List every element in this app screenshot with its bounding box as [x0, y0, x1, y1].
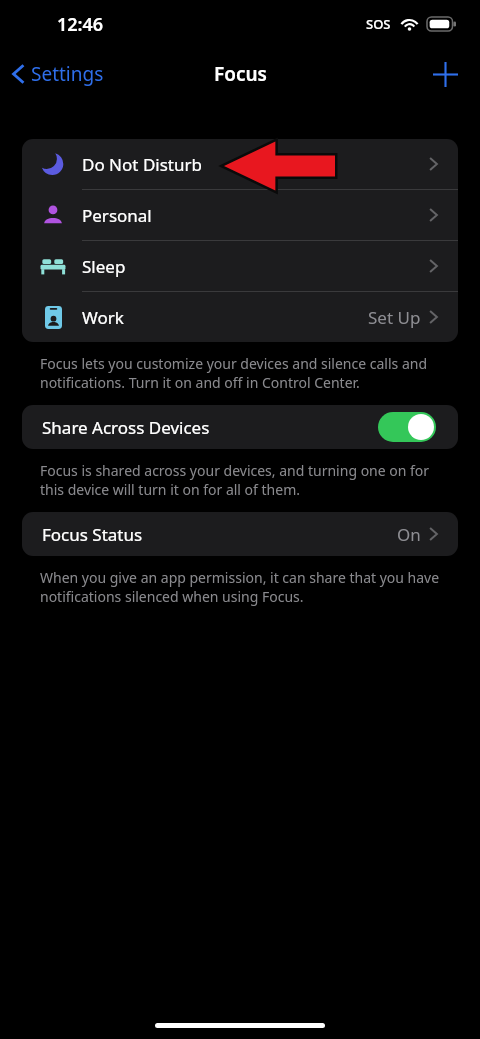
staticText: On	[397, 523, 421, 546]
staticText: When you give an app permission, it can …	[40, 568, 450, 606]
button[interactable]: Share Across Devices toggle, on	[378, 412, 436, 442]
staticText: Set Up	[368, 306, 421, 329]
button[interactable]: Personal	[22, 190, 458, 240]
staticText: 12:46	[57, 12, 104, 37]
staticText: Personal	[82, 204, 152, 227]
staticText: Do Not Disturb	[82, 153, 202, 176]
button[interactable]: Work	[22, 292, 458, 342]
staticText: Focus lets you customize your devices an…	[40, 354, 450, 392]
button[interactable]: Share Across Devices	[22, 405, 458, 449]
button[interactable]: Add Focus	[426, 55, 464, 93]
staticText: Focus Status	[42, 523, 143, 546]
staticText: SOS	[366, 15, 391, 33]
staticText: Share Across Devices	[42, 416, 210, 439]
staticText: Focus	[214, 61, 267, 87]
button[interactable]: Do Not Disturb	[22, 139, 458, 189]
button[interactable]: Settings	[0, 57, 112, 91]
button[interactable]: Focus Status	[22, 512, 458, 556]
staticText: Work	[82, 306, 124, 329]
staticText: Focus is shared across your devices, and…	[40, 461, 450, 499]
staticText: Sleep	[82, 255, 126, 278]
button[interactable]: Sleep	[22, 241, 458, 291]
staticText: Settings	[31, 61, 104, 87]
